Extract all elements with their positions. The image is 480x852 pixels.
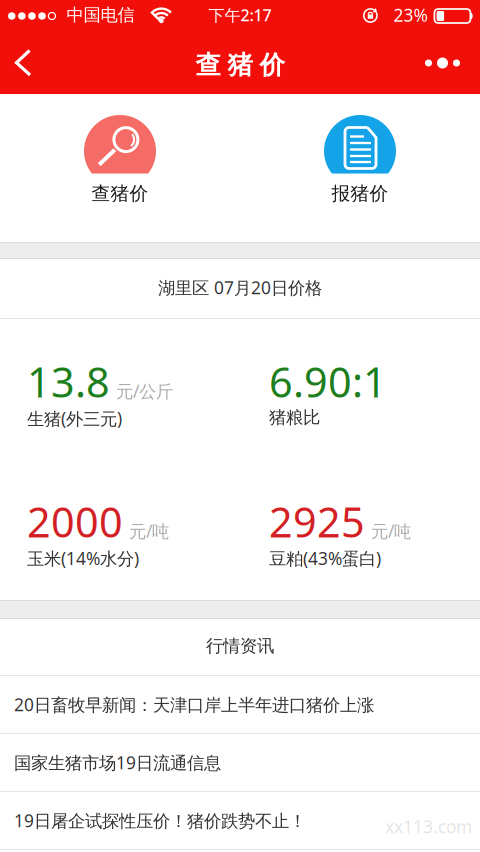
staticText: 报猪价 <box>331 182 388 205</box>
staticText: 猪粮比 <box>269 407 320 428</box>
staticText: 2925 <box>269 494 365 549</box>
staticText: 6.90:1 <box>269 354 387 409</box>
staticText: 行情资讯 <box>206 635 274 657</box>
button[interactable]: 查猪价 <box>84 115 156 205</box>
button[interactable] <box>413 35 480 90</box>
staticText: 13.8 <box>27 354 110 409</box>
staticText: 19日屠企试探性压价！猪价跌势不止！ <box>14 809 306 832</box>
staticText: 查猪价 <box>195 49 284 80</box>
staticText: 豆粕(43%蛋白) <box>269 547 381 570</box>
staticText: 元/公斤 <box>116 379 173 402</box>
staticText: 下午2:17 <box>208 4 271 26</box>
staticText: 20日畜牧早新闻：天津口岸上半年进口猪价上涨 <box>14 693 374 716</box>
button[interactable]: 19日屠企试探性压价！猪价跌势不止！ <box>0 792 480 850</box>
staticText: 查猪价 <box>91 182 148 205</box>
staticText: xx113.com <box>385 815 472 838</box>
staticText: 玉米(14%水分) <box>27 547 139 570</box>
staticText: 2000 <box>27 494 123 549</box>
button[interactable]: 20日畜牧早新闻：天津口岸上半年进口猪价上涨 <box>0 676 480 734</box>
staticText: 23% <box>393 3 427 26</box>
button[interactable]: 国家生猪市场19日流通信息 <box>0 734 480 792</box>
staticText: 湖里区 07月20日价格 <box>158 276 322 299</box>
button[interactable]: 报猪价 <box>324 115 396 205</box>
staticText: 生猪(外三元) <box>27 407 122 430</box>
staticText: 国家生猪市场19日流通信息 <box>14 751 221 774</box>
staticText: 元/吨 <box>371 519 411 542</box>
staticText: 中国电信 <box>66 4 134 26</box>
button[interactable] <box>0 33 44 92</box>
staticText: 元/吨 <box>129 519 169 542</box>
